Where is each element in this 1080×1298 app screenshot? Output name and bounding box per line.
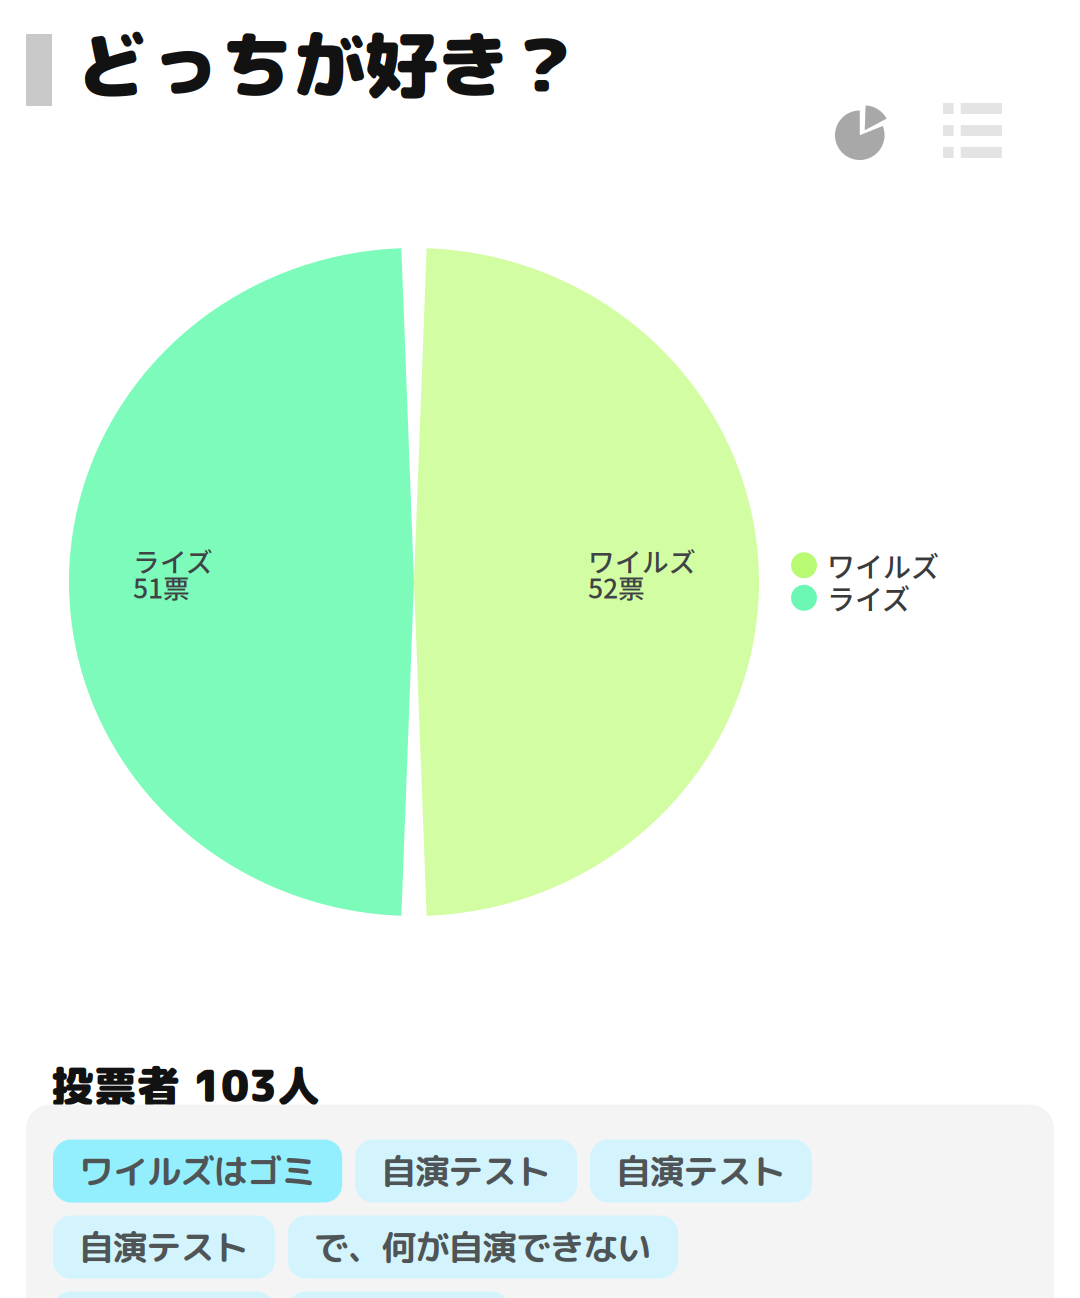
button[interactable]: で、何が自演できない xyxy=(288,1215,678,1278)
staticText: 自演テスト xyxy=(381,1147,551,1195)
staticText: ワイルズ xyxy=(827,545,939,585)
button[interactable]: 自演テスト xyxy=(288,1291,510,1298)
button[interactable]: 自演テスト xyxy=(53,1291,275,1298)
staticText: ワイルズはゴミ xyxy=(79,1147,316,1195)
staticText: ワイルズ xyxy=(588,541,696,580)
staticText: ライズ xyxy=(133,541,213,580)
staticText: で、何が自演できない xyxy=(314,1223,652,1271)
staticText: 自演テスト xyxy=(79,1223,249,1271)
staticText: 投票者 103人 xyxy=(51,1056,320,1115)
staticText: 自演テスト xyxy=(616,1147,786,1195)
button[interactable]: 自演テスト xyxy=(355,1139,577,1202)
staticText: ライズ xyxy=(827,577,910,618)
staticText: 52票 xyxy=(588,568,645,606)
button[interactable]: ワイルズはゴミ xyxy=(53,1139,342,1202)
button[interactable]: 自演テスト xyxy=(590,1139,812,1202)
staticText: 51票 xyxy=(133,568,190,606)
button[interactable]: Chart view xyxy=(809,85,921,176)
button[interactable]: 自演テスト xyxy=(53,1215,275,1278)
staticText: どっちが好き？ xyxy=(77,14,581,114)
button[interactable]: List view xyxy=(921,85,1024,176)
